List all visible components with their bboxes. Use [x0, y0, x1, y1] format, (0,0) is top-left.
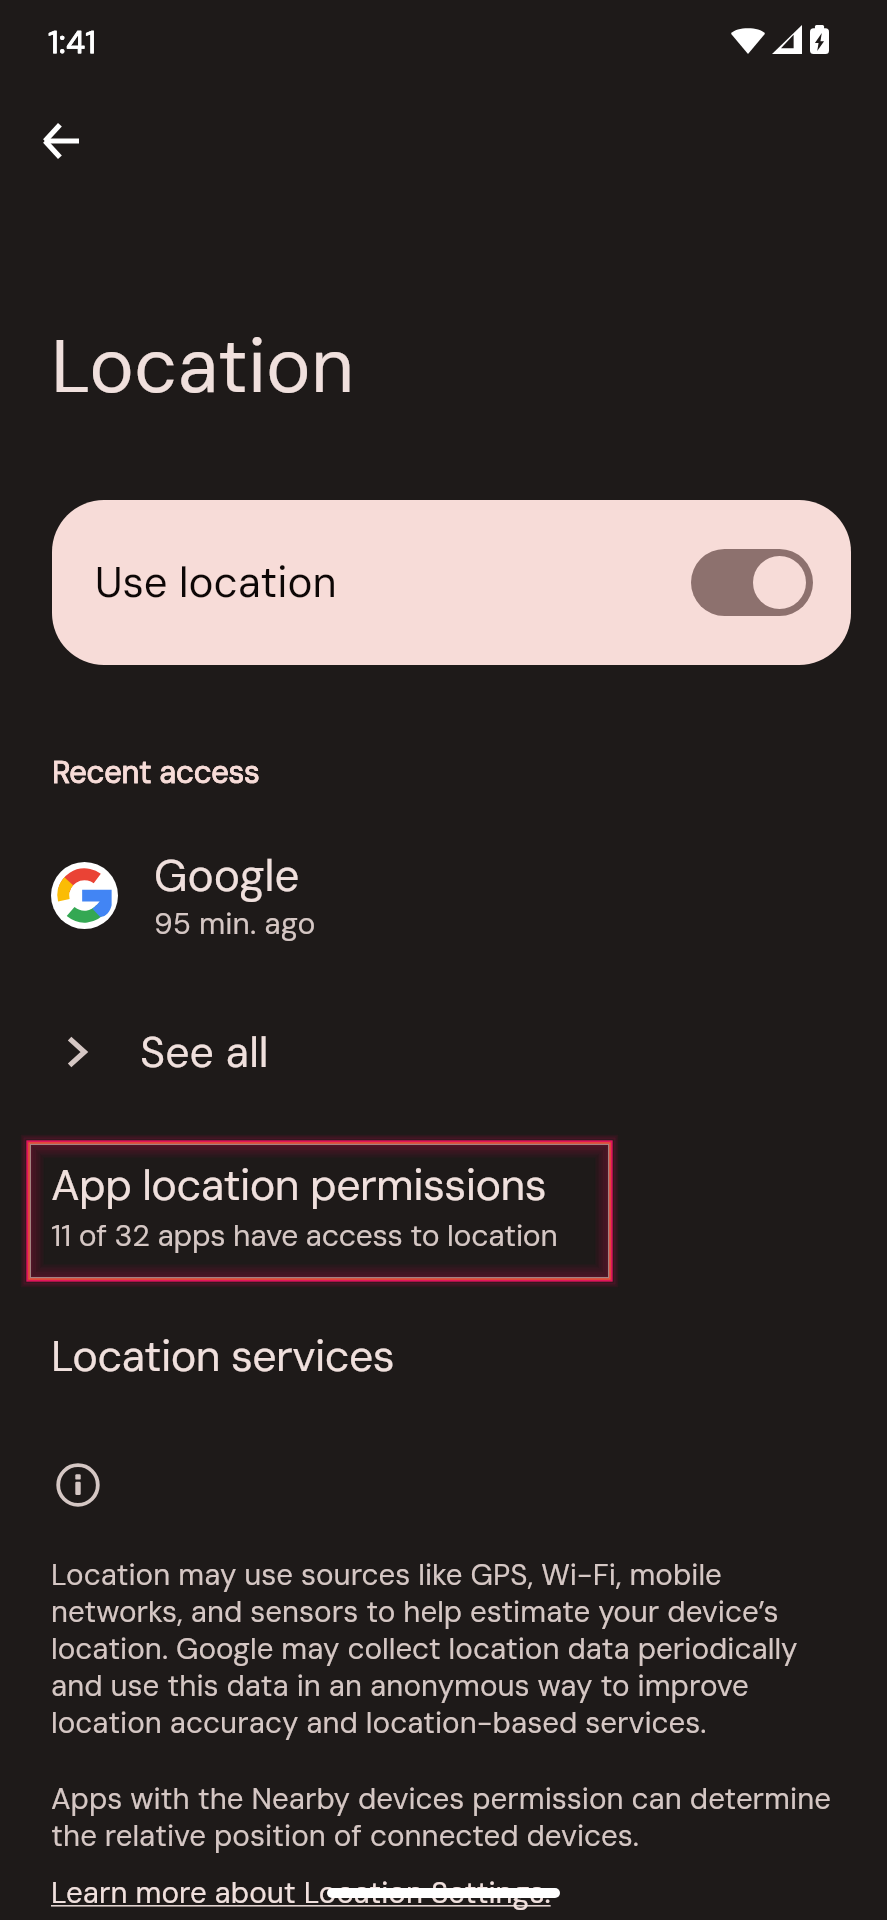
staticText: Apps with the Nearby devices permission …: [51, 1780, 851, 1855]
staticText: App location permissions: [51, 1157, 547, 1213]
staticText: Recent access: [52, 752, 260, 792]
staticText: Use location: [95, 555, 337, 610]
staticText: 1:41: [48, 22, 97, 62]
staticText: Recent access: [52, 752, 260, 792]
button[interactable]: Google: [0, 843, 887, 947]
staticText: 95 min. ago: [154, 904, 316, 943]
button[interactable]: Use location: [52, 500, 851, 665]
button[interactable]: Learn more about Location Settings.: [51, 1874, 551, 1912]
button[interactable]: See all: [0, 1008, 887, 1096]
staticText: 11 of 32 apps have access to location: [51, 1216, 558, 1255]
staticText: Location may use sources like GPS, Wi-Fi…: [51, 1556, 833, 1742]
staticText: Location services: [51, 1328, 395, 1384]
staticText: See all: [140, 1024, 269, 1080]
button[interactable]: Back: [24, 104, 98, 178]
staticText: Google: [154, 847, 300, 904]
staticText: 1:41: [48, 22, 97, 62]
staticText: Location: [51, 318, 355, 416]
button[interactable]: App location permissions: [26, 1140, 613, 1282]
